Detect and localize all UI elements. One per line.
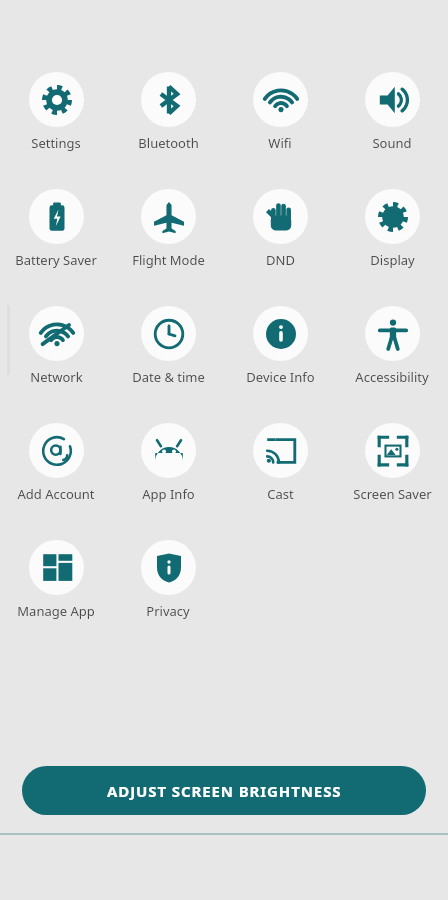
staticText: Screen Saver (353, 485, 432, 503)
staticText: Device Info (246, 368, 315, 386)
button[interactable]: Manage App (0, 540, 112, 620)
button[interactable]: ADJUST SCREEN BRIGHTNESS (22, 766, 426, 815)
button[interactable]: Battery Saver (0, 189, 112, 269)
button[interactable]: Add Account (0, 423, 112, 503)
button[interactable]: Bluetooth (112, 72, 224, 152)
button[interactable]: Screen Saver (336, 423, 448, 503)
staticText: ADJUST SCREEN BRIGHTNESS (107, 781, 342, 801)
staticText: Battery Saver (15, 251, 97, 269)
button[interactable]: Date & time (112, 306, 224, 386)
button[interactable]: Display (336, 189, 448, 269)
staticText: App Info (142, 485, 195, 503)
staticText: Flight Mode (132, 251, 205, 269)
staticText: Privacy (146, 602, 190, 620)
staticText: Bluetooth (138, 134, 199, 152)
staticText: Display (370, 251, 415, 269)
button[interactable]: DND (224, 189, 336, 269)
button[interactable]: Flight Mode (112, 189, 224, 269)
staticText: Cast (267, 485, 294, 503)
button[interactable]: Accessibility (336, 306, 448, 386)
button[interactable]: Network (0, 306, 112, 386)
staticText: Network (30, 368, 83, 386)
staticText: Manage App (17, 602, 95, 620)
button[interactable]: Wifi (224, 72, 336, 152)
button[interactable]: Sound (336, 72, 448, 152)
button[interactable]: Privacy (112, 540, 224, 620)
button[interactable]: Settings (0, 72, 112, 152)
staticText: Sound (372, 134, 412, 152)
button[interactable]: Device Info (224, 306, 336, 386)
staticText: Date & time (132, 368, 205, 386)
button[interactable]: Cast (224, 423, 336, 503)
staticText: DND (266, 251, 295, 269)
staticText: Accessibility (355, 368, 429, 386)
button[interactable]: App Info (112, 423, 224, 503)
staticText: Settings (31, 134, 81, 152)
staticText: Add Account (17, 485, 95, 503)
staticText: Wifi (268, 134, 292, 152)
